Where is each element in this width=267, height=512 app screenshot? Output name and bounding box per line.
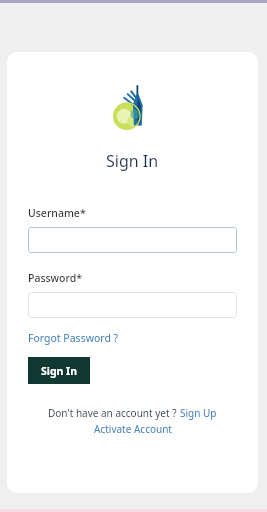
button[interactable]: Forgot Password ?	[28, 331, 119, 345]
staticText: Sign In	[106, 150, 159, 172]
staticText: Sign Up	[180, 406, 217, 420]
staticText: Forgot Password ?	[28, 331, 119, 345]
staticText: Username*	[28, 206, 86, 220]
button[interactable]	[28, 227, 237, 253]
button[interactable]: Activate Account	[94, 422, 172, 436]
button[interactable]	[28, 292, 237, 318]
staticText: Activate Account	[94, 422, 172, 436]
button[interactable]: Sign Up	[180, 406, 217, 420]
other: App logo	[111, 84, 155, 130]
button[interactable]: Sign In	[28, 357, 90, 384]
staticText: Password*	[28, 271, 83, 285]
staticText: Don't have an account yet ?	[48, 406, 180, 420]
staticText: Sign In	[41, 364, 78, 378]
